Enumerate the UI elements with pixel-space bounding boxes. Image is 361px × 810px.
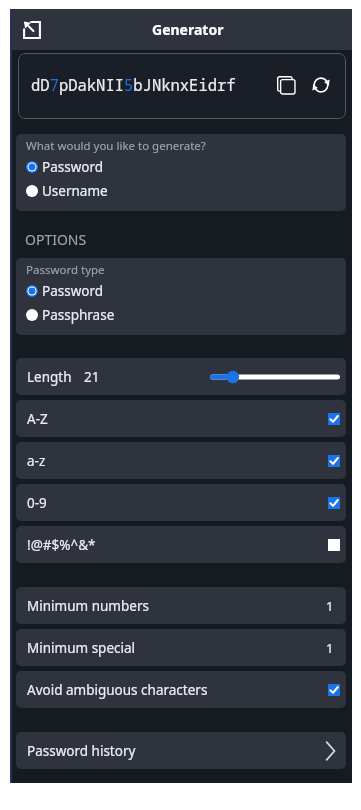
staticText: !@#$%^&* (27, 536, 96, 554)
button[interactable]: !@#$%^&* (16, 526, 346, 563)
button[interactable]: Password (16, 279, 346, 303)
button[interactable]: 0-9 (16, 484, 346, 521)
button[interactable]: Length (16, 358, 346, 395)
staticText: Generator (152, 20, 224, 39)
staticText: Avoid ambiguous characters (27, 681, 208, 699)
button[interactable]: Password history (16, 732, 346, 769)
staticText: a-z (27, 452, 46, 470)
staticText: 0-9 (27, 494, 47, 512)
staticText: Minimum numbers (27, 597, 149, 615)
staticText: 1 (326, 639, 334, 657)
staticText: 21 (84, 368, 100, 386)
button[interactable]: Passphrase (16, 303, 346, 327)
staticText: Username (42, 182, 108, 200)
button[interactable]: Minimum numbers (16, 587, 346, 624)
staticText: Length (27, 368, 72, 386)
button[interactable]: Password (16, 155, 346, 179)
staticText: What would you like to generate? (26, 138, 206, 154)
button[interactable]: Copy password (277, 76, 295, 94)
staticText: Password (42, 158, 104, 176)
staticText: Minimum special (27, 639, 136, 657)
staticText: A-Z (27, 410, 48, 428)
staticText: Password (42, 282, 104, 300)
button[interactable]: Generate password (312, 76, 330, 94)
button[interactable]: Avoid ambiguous characters (16, 671, 346, 708)
staticText: Passphrase (42, 306, 115, 324)
button[interactable]: A-Z (16, 400, 346, 437)
button[interactable]: Close (19, 17, 45, 43)
button[interactable]: a-z (16, 442, 346, 479)
staticText: Password history (27, 742, 136, 760)
staticText: dD7pDakNII5bJNknxEidrf (31, 74, 236, 95)
button[interactable]: Minimum special (16, 629, 346, 666)
staticText: 1 (326, 597, 334, 615)
button[interactable]: Username (16, 179, 346, 203)
staticText: Password type (26, 262, 105, 278)
staticText: OPTIONS (25, 230, 87, 249)
